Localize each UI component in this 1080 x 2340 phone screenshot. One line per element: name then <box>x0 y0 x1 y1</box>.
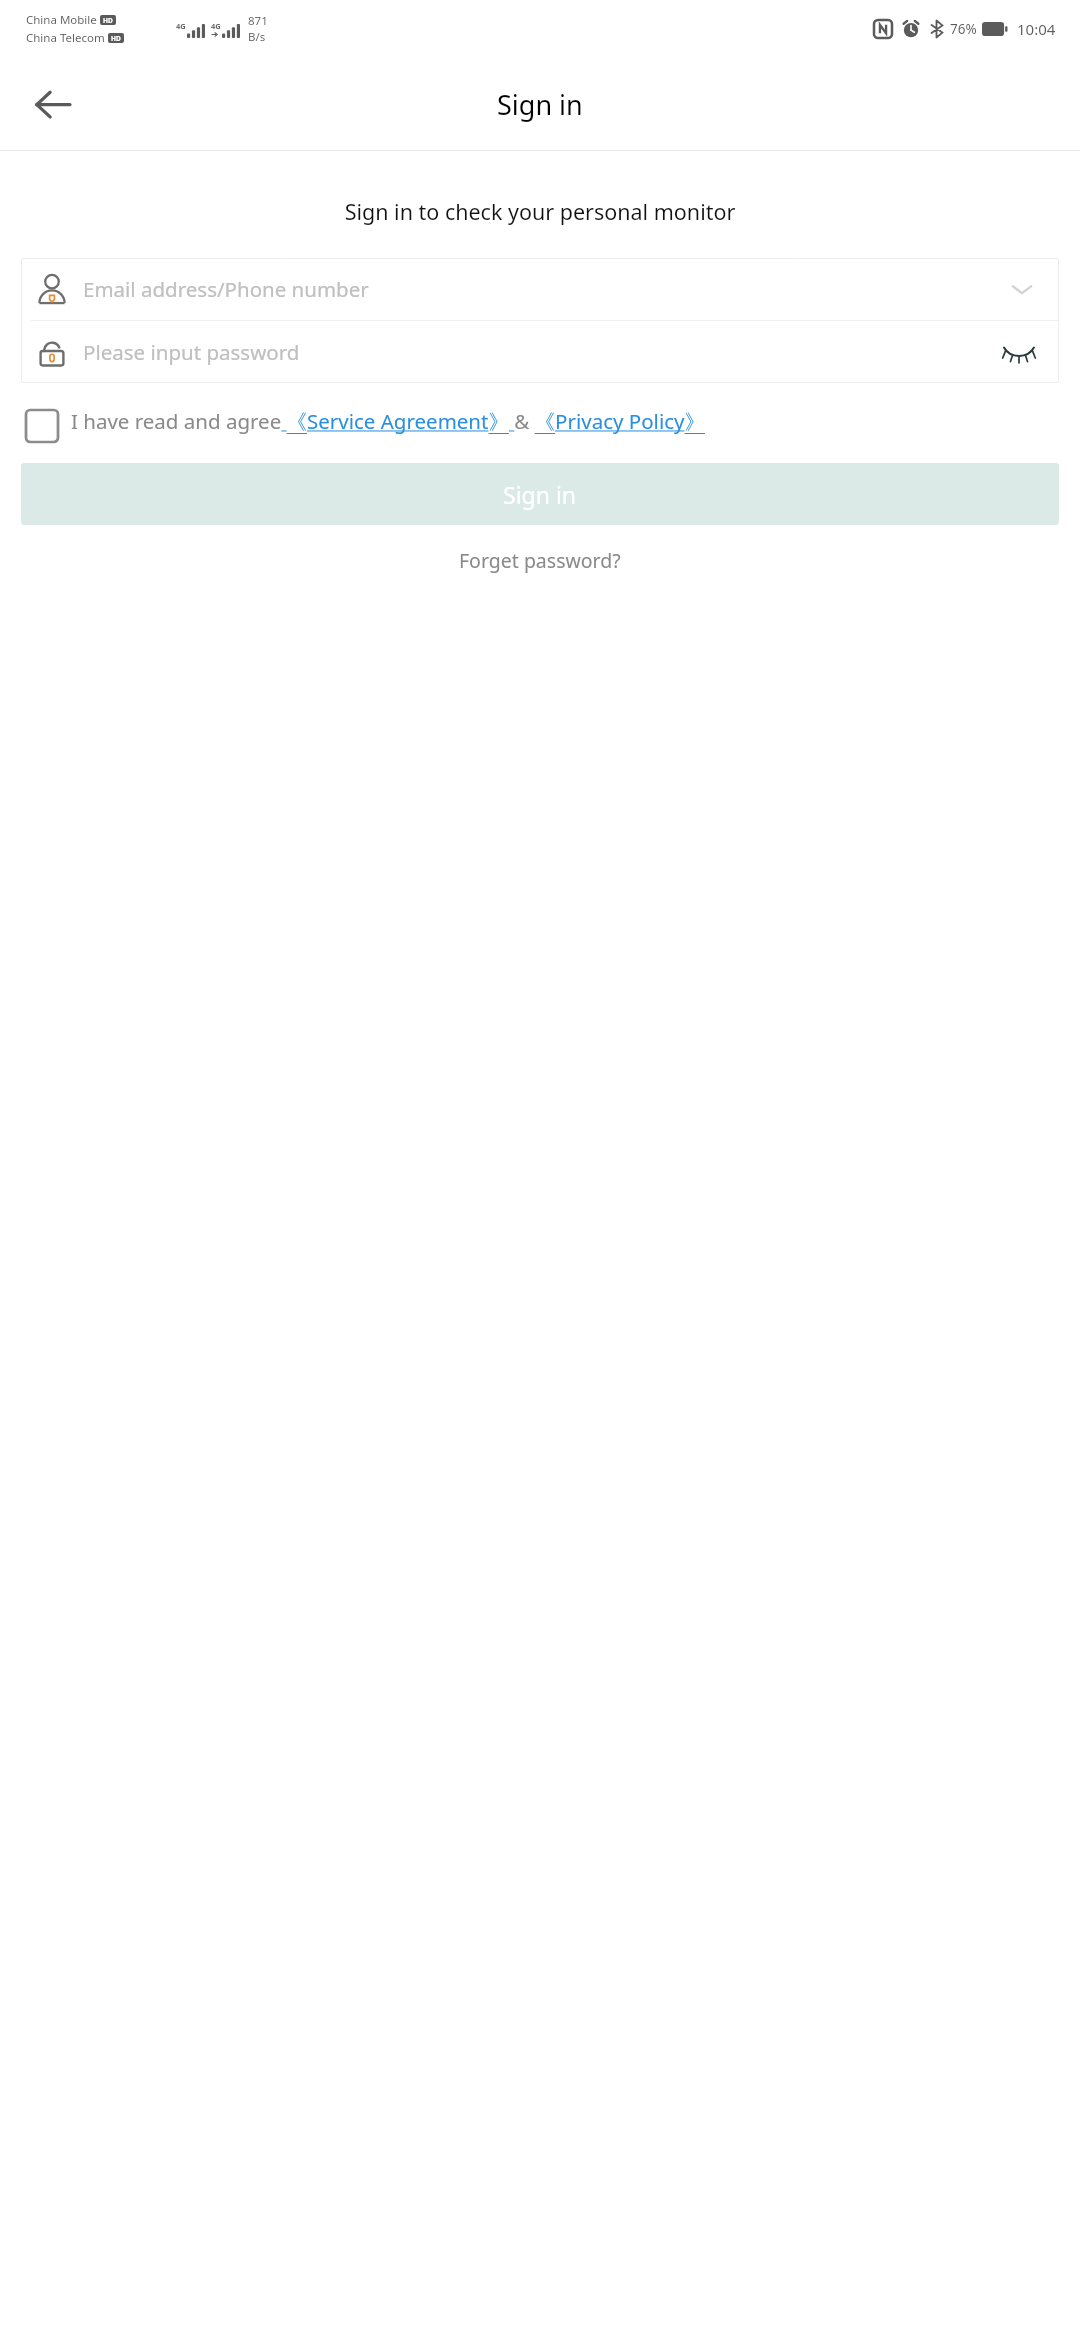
button[interactable]: Show password <box>999 332 1039 372</box>
staticText: Please input password <box>83 338 999 366</box>
button[interactable]: Forget password? <box>0 547 1080 574</box>
button[interactable]: I have read and agree 《Service Agreement… <box>71 407 1059 435</box>
staticText: 871 <box>248 13 268 29</box>
button[interactable]: Back <box>26 77 80 131</box>
button[interactable]: Email address/Phone number <box>21 258 1059 320</box>
staticText: China Mobile <box>26 12 97 28</box>
button[interactable]: Choose account <box>1005 272 1039 306</box>
staticText: B/s <box>248 29 266 45</box>
staticText: 76% <box>950 20 977 38</box>
staticText: 10:04 <box>1017 19 1056 39</box>
button[interactable]: Please input password <box>21 321 1059 383</box>
staticText: Sign in to check your personal monitor <box>0 197 1080 226</box>
staticText: 4G <box>211 21 221 31</box>
staticText: Email address/Phone number <box>83 275 1005 303</box>
button[interactable]: Agree to terms <box>21 405 63 447</box>
staticText: Sign in <box>497 86 583 123</box>
staticText: China Telecom <box>26 30 105 46</box>
staticText: 4G <box>176 21 186 31</box>
staticText: Forget password? <box>459 547 621 574</box>
staticText: HD <box>111 34 121 43</box>
staticText: Sign in <box>503 479 577 510</box>
staticText: HD <box>103 16 113 25</box>
